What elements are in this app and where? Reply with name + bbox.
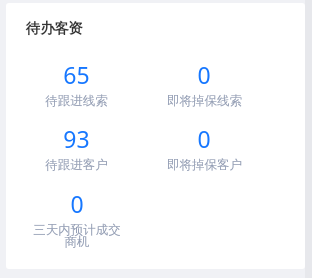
button[interactable]: 0 <box>31 188 123 250</box>
staticText: 0 <box>197 123 211 154</box>
staticText: 即将掉保线索 <box>167 93 242 109</box>
staticText: 待办客资 <box>26 19 83 37</box>
button[interactable]: 0 <box>140 123 268 173</box>
staticText: 即将掉保客户 <box>167 157 242 173</box>
button[interactable]: 65 <box>13 59 140 109</box>
staticText: 待跟进线索 <box>45 93 108 109</box>
staticText: 0 <box>70 188 84 219</box>
staticText: 0 <box>197 59 211 90</box>
staticText: 65 <box>63 59 90 90</box>
button[interactable]: 0 <box>140 59 268 109</box>
staticText: 三天内预计成交商机 <box>31 222 123 250</box>
staticText: 待跟进客户 <box>45 157 108 173</box>
staticText: 93 <box>63 123 90 154</box>
button[interactable]: 93 <box>13 123 140 173</box>
